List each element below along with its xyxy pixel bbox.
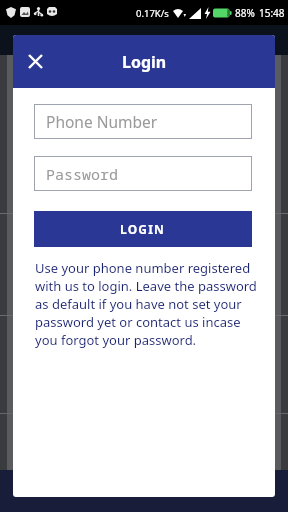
button[interactable] xyxy=(13,35,57,88)
staticText: 88% xyxy=(235,6,255,20)
button[interactable]: Phone Number xyxy=(34,104,252,139)
staticText: Phone Number xyxy=(46,111,158,132)
staticText: Login xyxy=(122,51,167,73)
staticText: LOGIN xyxy=(120,221,166,237)
button[interactable]: LOGIN xyxy=(34,211,252,247)
button[interactable]: Password xyxy=(34,156,252,191)
staticText: Password xyxy=(46,164,119,184)
staticText: 15:48 xyxy=(259,6,285,20)
staticText: 0.17K/s xyxy=(136,7,169,20)
staticText: Use your phone number registered with us… xyxy=(35,259,265,349)
